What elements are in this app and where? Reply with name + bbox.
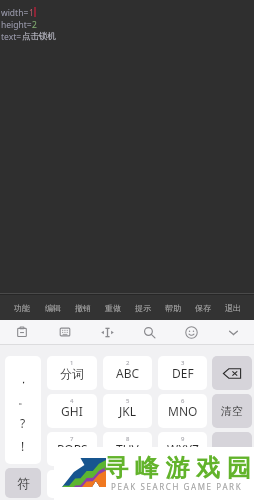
button[interactable]: 确定 (212, 432, 252, 498)
staticText: 4 (70, 397, 74, 405)
staticText: 符 (17, 475, 30, 491)
staticText: 确定 (221, 458, 243, 472)
staticText: ， (66, 477, 78, 492)
button[interactable]: 清空 (212, 394, 252, 428)
staticText: 3 (181, 359, 185, 367)
staticText: 编辑 (45, 303, 61, 313)
staticText: ABC (116, 365, 140, 381)
button[interactable]: 0 (103, 470, 152, 498)
button[interactable]: 保存 (188, 295, 218, 320)
button[interactable]: 符 (5, 468, 41, 498)
staticText: 帮助 (165, 303, 181, 313)
staticText: text= (1, 31, 22, 43)
button[interactable] (212, 356, 252, 390)
button[interactable]: 功能 (6, 295, 37, 320)
button[interactable]: 2 (103, 356, 152, 390)
staticText: 1 (29, 7, 34, 19)
button[interactable]: ， (5, 356, 41, 464)
staticText: GHI (61, 403, 83, 419)
button[interactable]: 。 (158, 470, 207, 498)
button[interactable]: ， (47, 470, 97, 498)
button[interactable]: Move cursor (86, 320, 128, 344)
button[interactable]: 5 (103, 394, 152, 428)
staticText: 2 (126, 359, 130, 367)
button[interactable]: Hide keyboard (212, 320, 254, 344)
staticText: 清空 (221, 404, 243, 418)
staticText: MNO (168, 403, 198, 419)
button[interactable]: Emoji (170, 320, 212, 344)
staticText: 。 (18, 393, 29, 407)
button[interactable]: 3 (158, 356, 207, 390)
staticText: 。 (177, 477, 189, 492)
staticText: 提示 (135, 303, 151, 313)
staticText: 点击锁机 (22, 31, 56, 42)
staticText: WXYZ (167, 441, 199, 457)
staticText: 2 (32, 19, 37, 31)
staticText: 8 (126, 435, 130, 443)
staticText: ， (18, 372, 29, 386)
button[interactable]: 6 (158, 394, 207, 428)
staticText: ! (21, 438, 25, 454)
staticText: PEAK SEARCH GAME PARK (111, 481, 243, 492)
staticText: height= (1, 19, 32, 31)
staticText: 保存 (195, 303, 211, 313)
staticText: 6 (181, 397, 185, 405)
staticText: 功能 (14, 303, 30, 313)
button[interactable]: 4 (47, 394, 97, 428)
button[interactable]: Keyboard layout (43, 320, 86, 344)
staticText: 1 (70, 359, 74, 367)
button[interactable]: 退出 (218, 295, 248, 320)
button[interactable]: Clipboard (0, 320, 43, 344)
button[interactable]: 8 (103, 432, 152, 466)
staticText: 7 (70, 435, 74, 443)
button[interactable]: 编辑 (37, 295, 68, 320)
staticText: ? (20, 415, 26, 431)
button[interactable]: 重做 (98, 295, 128, 320)
staticText: JKL (119, 403, 136, 419)
staticText: 寻峰游戏园 (101, 453, 254, 483)
button[interactable]: 帮助 (158, 295, 188, 320)
button[interactable]: Search (128, 320, 170, 344)
staticText: width= (1, 7, 29, 19)
staticText: 撤销 (75, 303, 91, 313)
button[interactable]: 9 (158, 432, 207, 466)
staticText: TUV (116, 441, 139, 457)
staticText: 分词 (60, 366, 84, 381)
staticText: 9 (181, 435, 185, 443)
staticText: PQRS (57, 441, 88, 457)
button[interactable]: 7 (47, 432, 97, 466)
staticText: 重做 (105, 303, 121, 313)
staticText: 5 (126, 397, 130, 405)
staticText: 退出 (225, 303, 241, 313)
button[interactable]: 提示 (128, 295, 158, 320)
button[interactable]: 1 (47, 356, 97, 390)
staticText: DEF (172, 365, 194, 381)
button[interactable]: 撤销 (68, 295, 98, 320)
